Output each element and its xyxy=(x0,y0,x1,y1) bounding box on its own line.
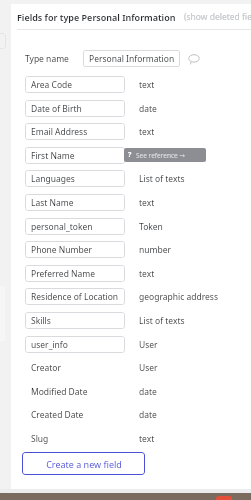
staticText: personal_token xyxy=(31,221,93,233)
staticText: text xyxy=(139,268,155,280)
staticText: Skills xyxy=(31,315,51,327)
button[interactable]: (show deleted fields) xyxy=(184,11,251,23)
button[interactable]: Skills xyxy=(25,312,125,329)
button[interactable]: Creator xyxy=(25,359,125,376)
staticText: date xyxy=(139,409,157,421)
button[interactable]: Phone Number xyxy=(25,241,125,258)
staticText: Type name xyxy=(25,53,69,65)
button[interactable]: Modified Date xyxy=(25,383,125,400)
button[interactable]: Languages xyxy=(25,170,125,187)
staticText: number xyxy=(139,244,171,256)
button[interactable]: Date of Birth xyxy=(25,100,125,117)
staticText: (show deleted fields) xyxy=(184,11,251,23)
staticText: Last Name xyxy=(31,197,74,209)
button[interactable]: Personal Information xyxy=(83,50,180,67)
button[interactable]: Last Name xyxy=(25,194,125,211)
staticText: date xyxy=(139,386,157,398)
staticText: Personal Information xyxy=(89,53,175,65)
staticText: text xyxy=(139,79,155,91)
staticText: geographic address xyxy=(139,291,218,303)
staticText: First Name xyxy=(31,150,75,162)
button[interactable]: Comment xyxy=(188,53,200,65)
staticText: Token xyxy=(139,221,163,233)
staticText: Area Code xyxy=(31,79,73,91)
button[interactable]: Residence of Location xyxy=(25,288,125,305)
button[interactable]: user_info xyxy=(25,336,125,353)
staticText: Residence of Location xyxy=(31,291,119,303)
button[interactable]: Email Address xyxy=(25,123,125,140)
staticText: Date of Birth xyxy=(31,103,82,115)
staticText: Phone Number xyxy=(31,244,92,256)
button[interactable]: Slug xyxy=(25,430,125,447)
staticText: Preferred Name xyxy=(31,268,96,280)
staticText: text xyxy=(139,433,155,445)
staticText: List of texts xyxy=(139,315,185,327)
staticText: User xyxy=(139,339,158,351)
staticText: Created Date xyxy=(31,409,84,421)
staticText: Create a new field xyxy=(46,458,122,470)
button[interactable]: First Name xyxy=(25,147,125,164)
staticText: text xyxy=(139,150,155,162)
staticText: text xyxy=(139,197,155,209)
staticText: List of texts xyxy=(139,173,185,185)
staticText: Creator xyxy=(31,362,61,374)
button[interactable]: Create a new field xyxy=(22,452,145,475)
button[interactable]: Preferred Name xyxy=(25,265,125,282)
button[interactable]: ? xyxy=(124,148,206,162)
staticText: Email Address xyxy=(31,126,88,138)
staticText: User xyxy=(139,362,158,374)
staticText: Fields for type Personal Information xyxy=(17,11,176,23)
staticText: text xyxy=(139,126,155,138)
staticText: Modified Date xyxy=(31,386,88,398)
button[interactable]: Area Code xyxy=(25,76,125,93)
staticText: Languages xyxy=(31,173,75,185)
button[interactable]: personal_token xyxy=(25,218,125,235)
staticText: date xyxy=(139,103,157,115)
staticText: Slug xyxy=(31,433,49,445)
staticText: See reference → xyxy=(136,151,185,160)
staticText: user_info xyxy=(31,339,68,351)
staticText: ? xyxy=(128,150,132,160)
button[interactable]: Created Date xyxy=(25,406,125,423)
